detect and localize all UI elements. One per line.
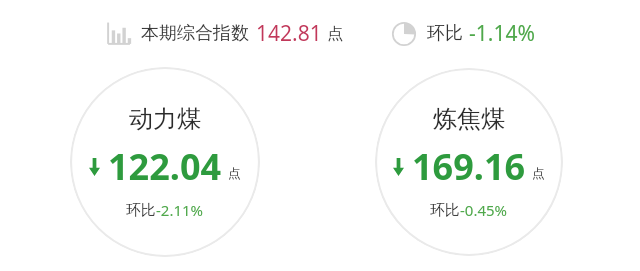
other: Down: [89, 158, 100, 176]
staticText: 本期综合指数: [141, 22, 249, 45]
staticText: 点: [532, 165, 545, 181]
other: Index chart: [105, 21, 131, 47]
staticText: 点: [228, 165, 241, 181]
staticText: 122.04: [108, 142, 222, 191]
staticText: -2.11%: [156, 200, 204, 220]
staticText: 动力煤: [129, 104, 201, 134]
staticText: 142.81: [256, 19, 322, 48]
staticText: 169.16: [412, 142, 526, 191]
staticText: 环比: [126, 201, 156, 220]
staticText: 环比: [430, 201, 460, 220]
other: Month over month: [391, 21, 417, 47]
button[interactable]: 动力煤: [70, 67, 260, 257]
button[interactable]: 炼焦煤: [375, 68, 563, 256]
staticText: 炼焦煤: [433, 104, 505, 134]
staticText: 点: [327, 24, 343, 44]
staticText: -0.45%: [460, 200, 508, 220]
other: Down: [393, 158, 404, 176]
button[interactable]: Month over month: [389, 19, 537, 48]
staticText: 环比: [427, 22, 463, 45]
staticText: -1.14%: [469, 19, 535, 48]
button[interactable]: Index chart: [103, 19, 345, 48]
